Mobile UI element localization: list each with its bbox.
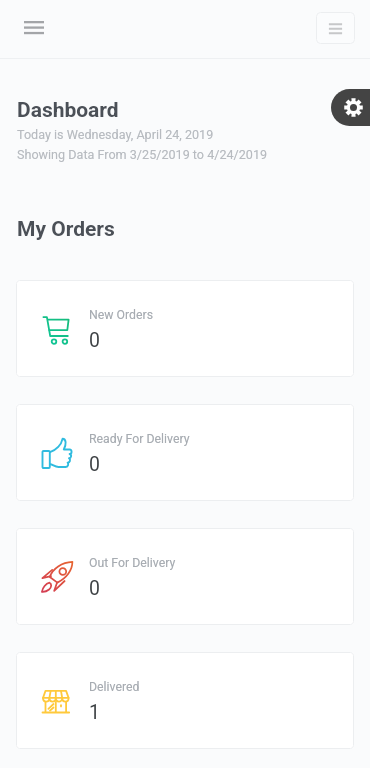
button[interactable]: Open navigation menu (13, 7, 54, 48)
staticText: Today is Wednesday, April 24, 2019 (17, 127, 214, 142)
staticText: 0 (89, 453, 100, 476)
staticText: Showing Data From 3/25/2019 to 4/24/2019 (17, 147, 268, 162)
staticText: 1 (89, 701, 100, 724)
staticText: Dashboard (17, 98, 119, 123)
staticText: My Orders (17, 217, 115, 242)
button[interactable]: New Orders (16, 280, 354, 377)
staticText: Ready For Delivery (89, 432, 190, 446)
staticText: 0 (89, 577, 100, 600)
staticText: 0 (89, 329, 100, 352)
button[interactable]: Settings (331, 89, 370, 126)
staticText: Delivered (89, 680, 140, 694)
button[interactable]: Ready For Delivery (16, 404, 354, 501)
staticText: Out For Delivery (89, 556, 176, 570)
button[interactable]: Delivered (16, 652, 354, 749)
button[interactable]: More options (316, 12, 355, 44)
button[interactable]: Out For Delivery (16, 528, 354, 625)
staticText: New Orders (89, 308, 154, 322)
